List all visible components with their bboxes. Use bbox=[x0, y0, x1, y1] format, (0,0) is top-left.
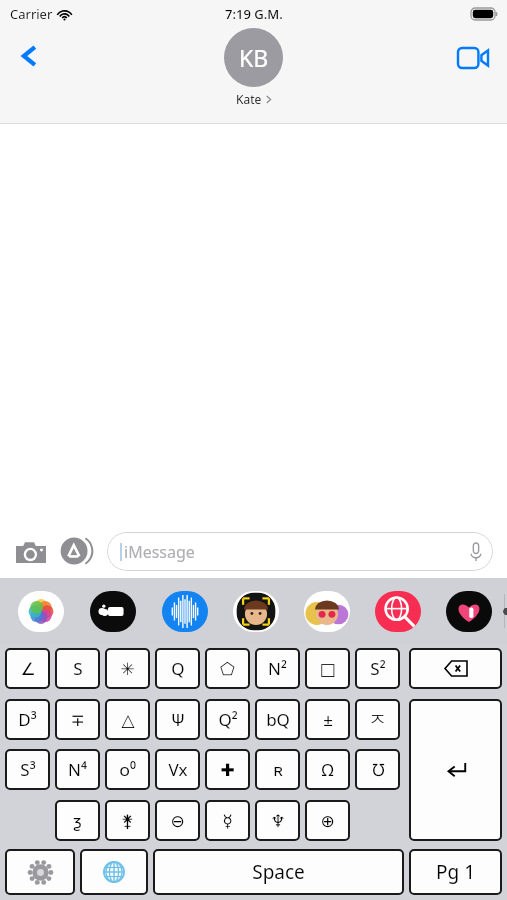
button[interactable]: ✚ bbox=[205, 749, 250, 790]
button[interactable]: △ bbox=[105, 699, 150, 740]
button[interactable]: ∓ bbox=[55, 699, 100, 740]
staticText: ✚ bbox=[220, 760, 235, 780]
button[interactable]: Back bbox=[8, 34, 52, 78]
staticText: ʀ bbox=[273, 758, 283, 781]
button[interactable]: N² bbox=[255, 648, 300, 689]
staticText: ƺ bbox=[73, 809, 82, 832]
button[interactable]: bQ bbox=[255, 699, 300, 740]
button[interactable]: Ω bbox=[305, 749, 350, 790]
button[interactable]: Memoji stickers bbox=[304, 591, 350, 632]
staticText: Carrier bbox=[10, 5, 53, 23]
button[interactable]: Keyboard settings bbox=[5, 849, 75, 895]
staticText: S² bbox=[370, 657, 386, 680]
button[interactable]: D³ bbox=[5, 699, 50, 740]
button[interactable]: Camera bbox=[14, 534, 48, 568]
staticText: ± bbox=[323, 708, 333, 731]
button[interactable]: ♆ bbox=[255, 800, 300, 841]
staticText: Pg 1 bbox=[436, 859, 475, 885]
staticText: Ψ bbox=[171, 708, 185, 731]
button[interactable]: Voice bbox=[162, 591, 208, 632]
button[interactable]: Pg 1 bbox=[409, 849, 502, 895]
button[interactable]: ᴏ⁰ bbox=[105, 749, 150, 790]
button[interactable]: FaceTime video call bbox=[451, 36, 495, 80]
staticText: KB bbox=[239, 42, 269, 73]
button[interactable]: ⊕ bbox=[305, 800, 350, 841]
button[interactable]: Change keyboard bbox=[80, 849, 148, 895]
button[interactable]: Image search bbox=[375, 591, 421, 632]
button[interactable]: ☿ bbox=[205, 800, 250, 841]
button[interactable]: Space bbox=[153, 849, 404, 895]
staticText: Ω bbox=[321, 758, 334, 781]
button[interactable]: ⚵ bbox=[105, 800, 150, 841]
staticText: ㅈ bbox=[369, 709, 386, 730]
button[interactable]: ㅈ bbox=[355, 699, 400, 740]
button[interactable]: ⊖ bbox=[155, 800, 200, 841]
staticText: Space bbox=[252, 859, 305, 885]
button[interactable]: KB bbox=[224, 28, 283, 107]
button[interactable]: ƺ bbox=[55, 800, 100, 841]
button[interactable]: Ψ bbox=[155, 699, 200, 740]
staticText: ℧ bbox=[371, 758, 385, 781]
button[interactable]: S² bbox=[355, 648, 400, 689]
button[interactable]: Q bbox=[155, 648, 200, 689]
button[interactable]: Backspace bbox=[409, 648, 502, 689]
button[interactable]: Q² bbox=[205, 699, 250, 740]
button[interactable]: Return bbox=[409, 699, 502, 841]
button[interactable]: Apps bbox=[58, 533, 94, 569]
staticText: Kate bbox=[236, 91, 262, 107]
staticText: ⊕ bbox=[320, 811, 335, 831]
button[interactable]: Apple Cash bbox=[90, 591, 136, 632]
button[interactable]: □ bbox=[305, 648, 350, 689]
button[interactable]: iMessage bbox=[107, 532, 493, 571]
button[interactable]: ℧ bbox=[355, 749, 400, 790]
staticText: bQ bbox=[266, 708, 290, 731]
staticText: iMessage bbox=[124, 541, 195, 563]
staticText: ♆ bbox=[270, 811, 286, 831]
staticText: △ bbox=[121, 710, 135, 730]
button[interactable]: ʀ bbox=[255, 749, 300, 790]
staticText: Vx bbox=[168, 758, 188, 781]
button[interactable]: N⁴ bbox=[55, 749, 100, 790]
staticText: □ bbox=[319, 659, 336, 679]
staticText: ⊖ bbox=[170, 811, 185, 831]
staticText: ⚵ bbox=[121, 811, 134, 831]
staticText: N⁴ bbox=[68, 758, 87, 781]
staticText: ☿ bbox=[222, 811, 233, 831]
button[interactable]: ✳ bbox=[105, 648, 150, 689]
staticText: S bbox=[73, 657, 83, 680]
staticText: 7:19 G.M. bbox=[225, 5, 283, 23]
staticText: N² bbox=[268, 657, 287, 680]
button[interactable]: S³ bbox=[5, 749, 50, 790]
button[interactable]: ± bbox=[305, 699, 350, 740]
staticText: Q² bbox=[218, 708, 238, 731]
staticText: ⬠ bbox=[220, 659, 235, 679]
button[interactable]: Photos bbox=[18, 591, 64, 632]
button[interactable]: Digital Touch bbox=[446, 591, 492, 632]
button[interactable]: ⬠ bbox=[205, 648, 250, 689]
staticText: ᴏ⁰ bbox=[119, 758, 136, 781]
staticText: Q bbox=[171, 657, 185, 680]
button[interactable]: Memoji bbox=[233, 591, 279, 632]
staticText: ✳ bbox=[120, 659, 135, 679]
button[interactable]: Vx bbox=[155, 749, 200, 790]
staticText: ∓ bbox=[70, 710, 85, 730]
staticText: S³ bbox=[20, 758, 36, 781]
button[interactable]: ∠ bbox=[5, 648, 50, 689]
button[interactable]: S bbox=[55, 648, 100, 689]
staticText: D³ bbox=[18, 708, 37, 731]
staticText: ∠ bbox=[20, 659, 36, 679]
